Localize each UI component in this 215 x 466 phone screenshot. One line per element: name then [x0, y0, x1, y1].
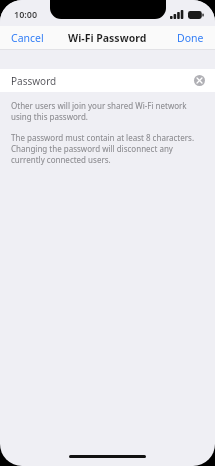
staticText: Cancel: [11, 31, 44, 45]
button[interactable]: Done: [166, 26, 215, 50]
staticText: Done: [177, 31, 204, 45]
staticText: 10:00: [14, 8, 38, 20]
button[interactable]: Clear text: [194, 75, 205, 86]
staticText: The password must contain at least 8 cha…: [11, 132, 204, 165]
button[interactable]: Cancel: [0, 26, 55, 50]
staticText: Wi-Fi Password: [68, 31, 147, 45]
staticText: Password: [11, 74, 57, 88]
staticText: Other users will join your shared Wi-Fi …: [11, 100, 204, 122]
button[interactable]: Password: [0, 69, 215, 92]
